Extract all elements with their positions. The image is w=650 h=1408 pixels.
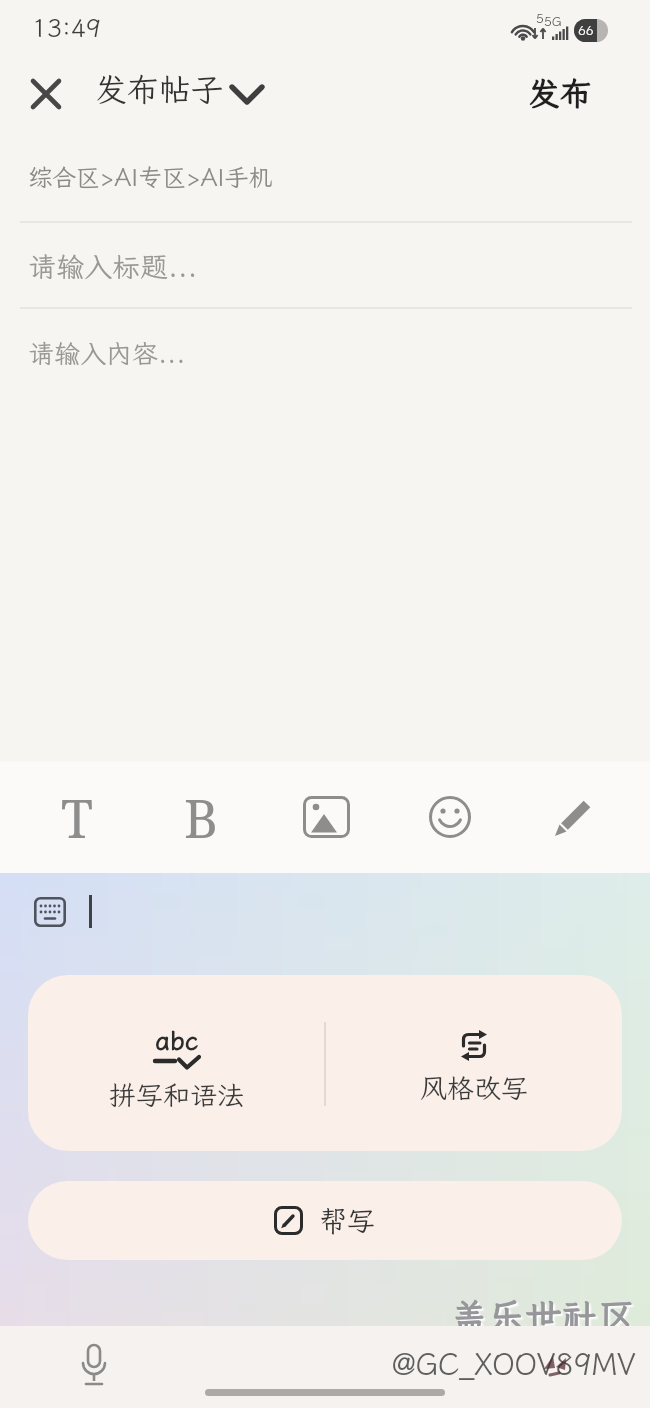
button[interactable]: T	[14, 761, 139, 873]
button[interactable]	[388, 761, 512, 873]
button[interactable]: 风格改写	[325, 975, 622, 1151]
staticText: 13:49	[32, 11, 101, 44]
button[interactable]	[28, 892, 72, 932]
staticText: abc	[155, 1023, 199, 1057]
staticText: 风格改写	[420, 1070, 528, 1106]
staticText: 发布帖子	[95, 68, 224, 110]
button[interactable]: 发布帖子	[90, 66, 274, 120]
button[interactable]	[70, 1340, 118, 1392]
staticText: 发布	[528, 72, 593, 114]
button[interactable]	[512, 761, 636, 873]
button[interactable]	[264, 761, 388, 873]
staticText: 请输入内容...	[28, 336, 186, 370]
staticText: 拼写和语法	[109, 1077, 244, 1113]
staticText: @GC_XOOV89MV	[392, 1344, 636, 1382]
staticText: 5G	[544, 13, 562, 30]
button[interactable]: B	[139, 761, 264, 873]
button[interactable]	[22, 70, 70, 118]
staticText: 66	[578, 22, 594, 39]
staticText: 5	[536, 10, 544, 27]
button[interactable]: 发布	[514, 66, 606, 120]
staticText: T	[61, 782, 93, 853]
staticText: B	[184, 782, 219, 853]
staticText: 综合区>AI专区>AI手机	[28, 161, 273, 193]
button[interactable]: abc	[28, 975, 325, 1151]
button[interactable]: 帮写	[28, 1181, 622, 1260]
staticText: 帮写	[319, 1202, 376, 1239]
staticText: 盖乐世社区	[451, 1292, 636, 1336]
staticText: 请输入标题...	[28, 248, 198, 285]
